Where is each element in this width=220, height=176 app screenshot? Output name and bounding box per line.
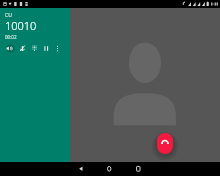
staticText: CU	[5, 12, 12, 19]
button[interactable]: Dialpad	[29, 43, 40, 54]
button[interactable]: Home	[97, 162, 121, 176]
other: More options	[52, 43, 63, 54]
button[interactable]: Back	[69, 162, 93, 176]
button[interactable]: End call	[157, 133, 173, 154]
other: Hold	[41, 43, 52, 54]
other: Speaker	[5, 43, 16, 54]
other: Dialpad	[29, 43, 40, 54]
button[interactable]: Speaker	[5, 43, 16, 54]
button[interactable]: Mute	[17, 43, 28, 54]
button[interactable]: Hold	[41, 43, 52, 54]
staticText: 00:02	[5, 34, 17, 40]
staticText: 10010	[5, 18, 37, 33]
button[interactable]: Recents	[126, 162, 150, 176]
other: Mute	[17, 43, 28, 54]
button[interactable]: More options	[52, 43, 63, 54]
